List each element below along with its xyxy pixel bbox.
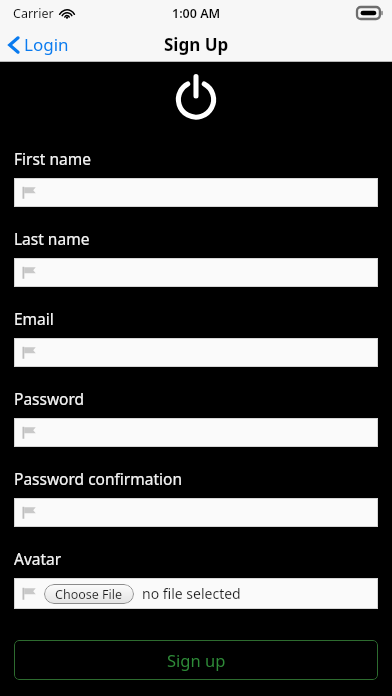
staticText: Last name — [14, 228, 90, 249]
staticText: Login — [24, 33, 69, 56]
staticText: Carrier — [13, 5, 54, 22]
staticText: Choose File — [55, 586, 123, 603]
staticText: Email — [14, 308, 54, 329]
button[interactable]: Login — [0, 29, 79, 60]
staticText: 1:00 AM — [172, 5, 221, 22]
staticText: Sign up — [167, 649, 226, 671]
button[interactable]: Choose File — [44, 584, 134, 604]
button[interactable] — [14, 258, 378, 287]
button[interactable] — [14, 178, 378, 207]
staticText: Sign Up — [164, 33, 229, 56]
button[interactable] — [14, 418, 378, 447]
button[interactable] — [14, 338, 378, 367]
staticText: Avatar — [14, 548, 62, 569]
button[interactable]: Sign up — [14, 640, 378, 680]
button[interactable] — [14, 498, 378, 527]
staticText: First name — [14, 148, 92, 169]
staticText: Password — [14, 388, 85, 409]
staticText: Password confirmation — [14, 468, 183, 489]
staticText: no file selected — [142, 584, 241, 603]
